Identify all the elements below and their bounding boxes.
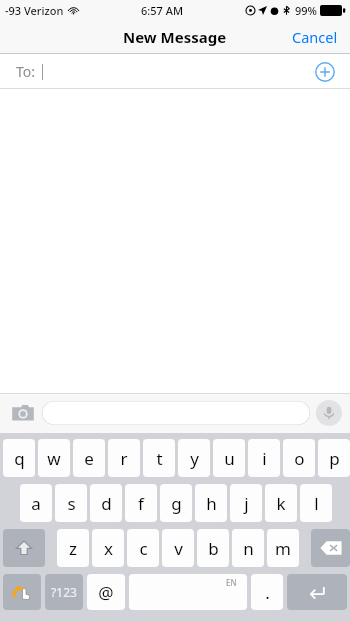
button[interactable]: q <box>3 439 35 477</box>
staticText: e <box>84 447 94 470</box>
button[interactable]: i <box>248 439 280 477</box>
button[interactable]: e <box>73 439 105 477</box>
button[interactable]: s <box>55 484 87 522</box>
staticText: a <box>31 492 41 515</box>
staticText: u <box>224 447 235 470</box>
staticText: i <box>262 447 267 470</box>
staticText: 99% <box>295 3 317 18</box>
staticText: v <box>174 537 183 560</box>
staticText: s <box>67 492 76 515</box>
button[interactable]: n <box>232 529 264 567</box>
button[interactable] <box>42 401 310 425</box>
button[interactable]: v <box>162 529 194 567</box>
staticText: k <box>276 492 286 515</box>
staticText: EN <box>226 577 237 588</box>
button[interactable]: Backspace <box>311 529 350 567</box>
button[interactable]: k <box>265 484 297 522</box>
staticText: j <box>244 492 249 515</box>
button[interactable]: h <box>195 484 227 522</box>
button[interactable]: Space <box>129 574 247 610</box>
staticText: h <box>206 492 217 515</box>
staticText: m <box>275 537 291 560</box>
button[interactable]: r <box>108 439 140 477</box>
button[interactable]: d <box>90 484 122 522</box>
staticText: x <box>104 537 113 560</box>
staticText: g <box>171 492 182 515</box>
button[interactable]: . <box>251 574 283 610</box>
button[interactable]: Voice message <box>316 400 342 426</box>
staticText: f <box>138 492 144 515</box>
button[interactable]: l <box>300 484 332 522</box>
button[interactable]: Shift <box>3 529 45 567</box>
button[interactable]: m <box>267 529 299 567</box>
staticText: n <box>243 537 254 560</box>
button[interactable]: Return <box>287 574 347 610</box>
button[interactable]: x <box>92 529 124 567</box>
button[interactable]: a <box>20 484 52 522</box>
staticText: l <box>314 492 319 515</box>
button[interactable]: b <box>197 529 229 567</box>
button[interactable]: z <box>57 529 89 567</box>
button[interactable]: f <box>125 484 157 522</box>
button[interactable]: @ <box>87 574 125 610</box>
button[interactable]: w <box>38 439 70 477</box>
staticText: o <box>294 447 305 470</box>
button[interactable]: p <box>318 439 350 477</box>
staticText: q <box>14 447 25 470</box>
button[interactable]: t <box>143 439 175 477</box>
button[interactable]: u <box>213 439 245 477</box>
button[interactable]: o <box>283 439 315 477</box>
staticText: . <box>265 581 270 604</box>
staticText: d <box>101 492 112 515</box>
staticText: z <box>69 537 77 560</box>
button[interactable]: Camera <box>8 398 38 428</box>
button[interactable]: Add contact <box>312 59 338 85</box>
staticText: ?123 <box>51 584 77 600</box>
button[interactable]: c <box>127 529 159 567</box>
staticText: Cancel <box>292 27 338 47</box>
staticText: y <box>190 447 199 470</box>
button[interactable]: g <box>160 484 192 522</box>
staticText: b <box>208 537 219 560</box>
staticText: New Message <box>123 27 227 47</box>
staticText: t <box>156 447 163 470</box>
staticText: c <box>139 537 148 560</box>
staticText: @ <box>98 581 114 604</box>
staticText: p <box>329 447 340 470</box>
button[interactable]: Handwriting input <box>3 574 41 610</box>
staticText: w <box>47 447 61 470</box>
staticText: 6:57 AM <box>141 3 184 18</box>
button[interactable]: y <box>178 439 210 477</box>
staticText: r <box>120 447 128 470</box>
staticText: To: <box>16 62 36 81</box>
button[interactable]: ?123 <box>45 574 83 610</box>
button[interactable]: j <box>230 484 262 522</box>
button[interactable]: Cancel <box>280 21 350 53</box>
staticText: -93 Verizon <box>5 3 64 18</box>
